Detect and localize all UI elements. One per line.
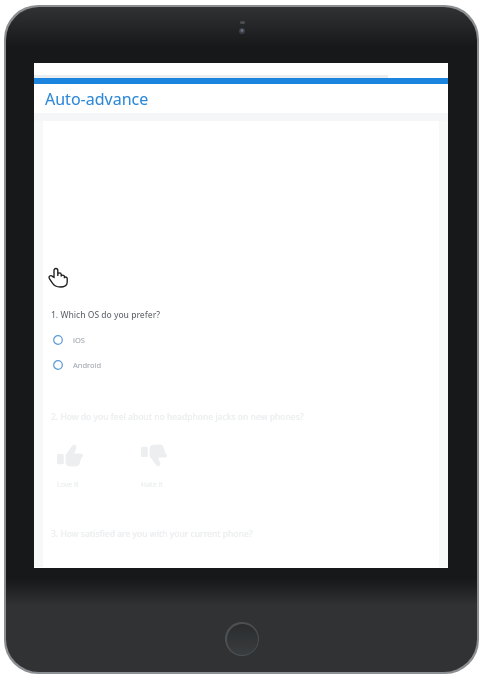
staticText: 2. How do you feel about no headphone ja…: [51, 411, 304, 423]
staticText: Hate it: [141, 480, 163, 490]
button[interactable]: iOS: [43, 331, 439, 348]
button[interactable]: Auto-advance: [34, 84, 448, 113]
button[interactable]: Love it: [57, 443, 103, 490]
button[interactable]: Android: [43, 356, 439, 373]
staticText: iOS: [73, 335, 85, 345]
staticText: Android: [73, 360, 102, 370]
button[interactable]: Hate it: [141, 443, 187, 490]
staticText: 1. Which OS do you prefer?: [51, 309, 161, 321]
button[interactable]: Home: [225, 622, 259, 656]
staticText: Auto-advance: [45, 88, 149, 110]
staticText: Love it: [57, 480, 79, 490]
staticText: 3. How satisfied are you with your curre…: [51, 528, 253, 540]
